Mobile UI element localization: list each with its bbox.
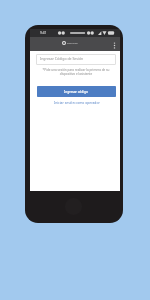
staticText: Iniciar sesión como operador	[54, 100, 100, 105]
staticText: avanzar.app	[67, 42, 78, 45]
button[interactable]: More options	[110, 38, 119, 51]
button[interactable]: Ingresar código	[37, 86, 116, 97]
staticText: 9:41	[40, 31, 47, 35]
staticText: Ingresar Código de Sesión	[40, 56, 84, 61]
button[interactable]: Iniciar sesión como operador	[37, 100, 117, 105]
staticText: Ingresar código	[64, 90, 89, 94]
button[interactable]: Ingresar Código de Sesión	[36, 54, 116, 65]
staticText: *Pide una sesión para realizar la primer…	[36, 68, 116, 76]
